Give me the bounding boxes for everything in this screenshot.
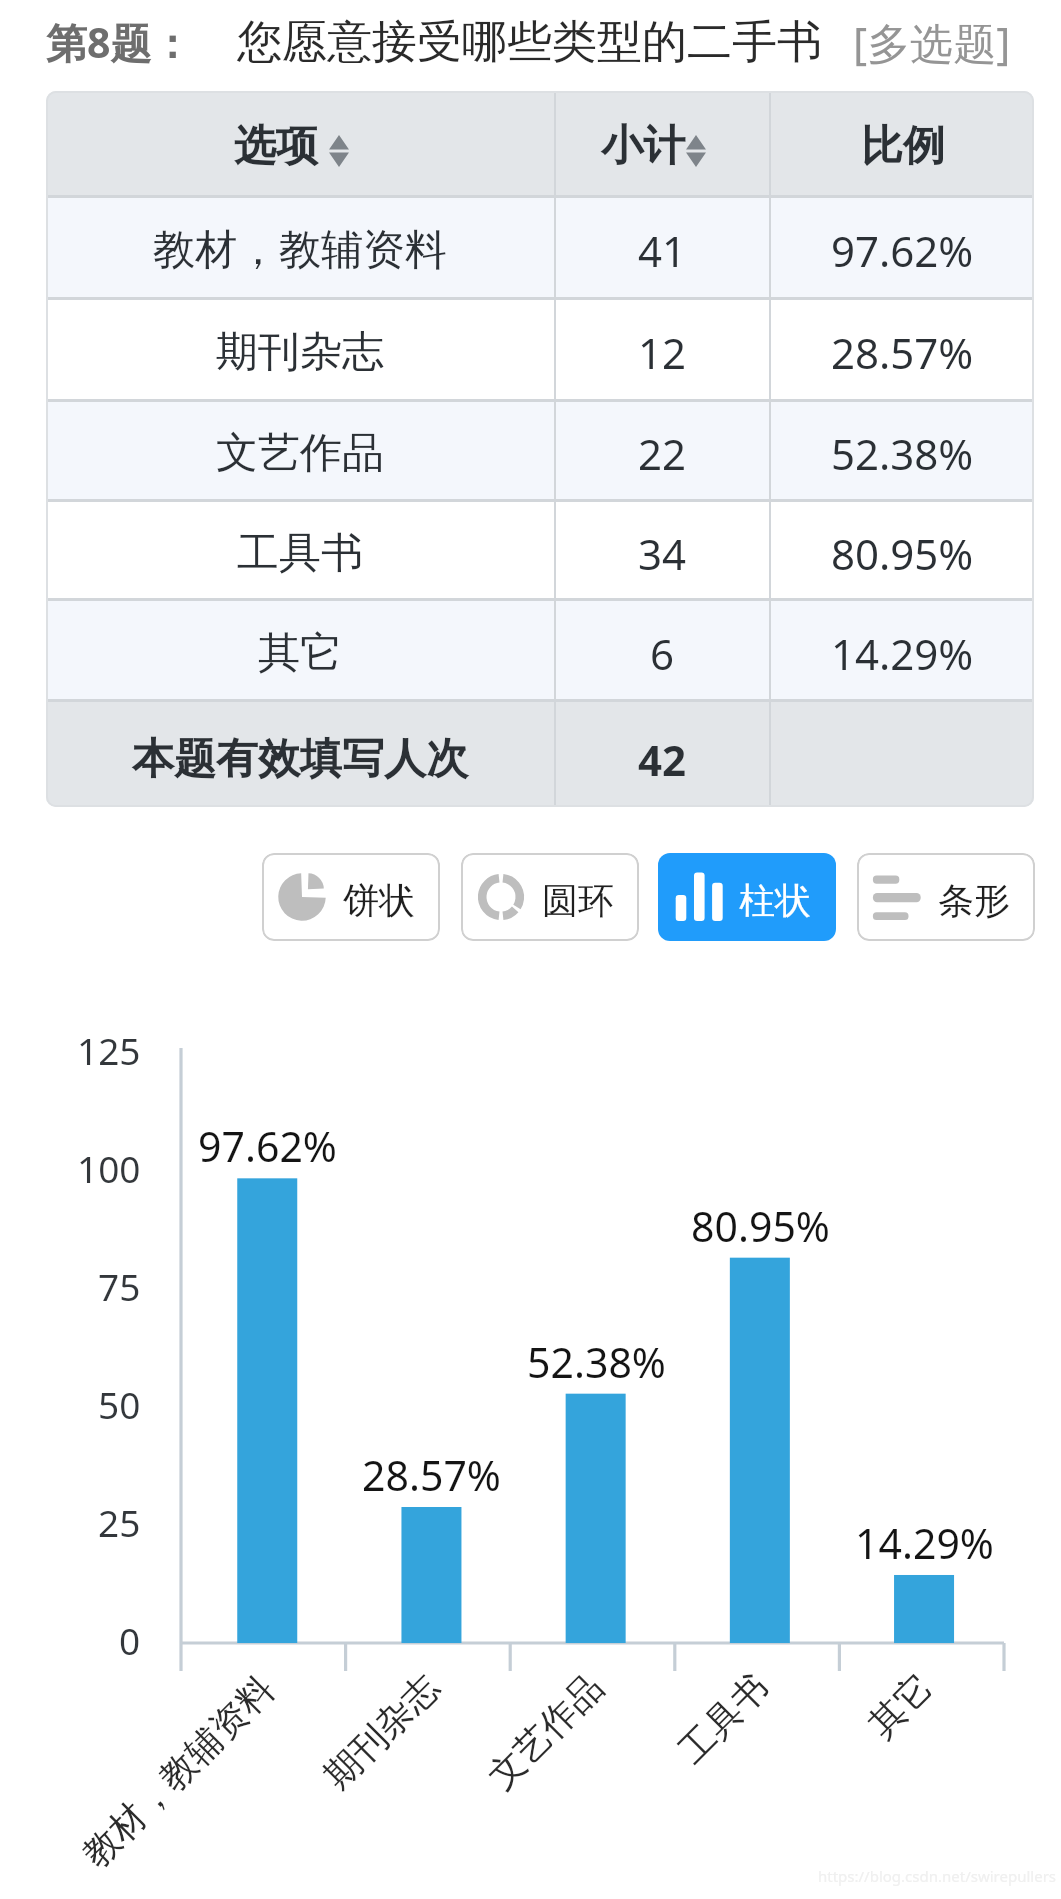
- staticText: 您愿意接受哪些类型的二手书: [237, 14, 822, 71]
- staticText: 14.29%: [855, 1515, 994, 1571]
- staticText: 28.57%: [362, 1447, 501, 1503]
- staticText: 34: [638, 525, 687, 582]
- button[interactable]: Bar chart: [857, 853, 1035, 941]
- staticText: 工具书: [237, 527, 363, 580]
- staticText: 文艺作品: [216, 427, 384, 480]
- staticText: 其它: [258, 627, 342, 680]
- staticText: 125: [77, 1025, 141, 1075]
- staticText: 97.62%: [831, 222, 974, 279]
- staticText: 100: [77, 1143, 141, 1193]
- staticText: 饼状: [343, 878, 415, 923]
- staticText: 6: [650, 625, 675, 682]
- staticText: 42: [638, 731, 687, 788]
- button[interactable]: 小计: [556, 91, 769, 195]
- staticText: 选项: [234, 120, 318, 173]
- staticText: 50: [98, 1379, 141, 1429]
- staticText: 条形: [938, 878, 1010, 923]
- staticText: 比例: [861, 120, 945, 173]
- staticText: 教材，教辅资料: [73, 1666, 283, 1876]
- staticText: 期刊杂志: [314, 1664, 448, 1798]
- staticText: 工具书: [669, 1664, 777, 1772]
- staticText: 25: [98, 1497, 141, 1547]
- staticText: 52.38%: [831, 425, 974, 482]
- staticText: 52.38%: [527, 1334, 666, 1390]
- staticText: 14.29%: [831, 625, 974, 682]
- button[interactable]: Pie chart: [262, 853, 440, 941]
- staticText: 41: [638, 222, 687, 279]
- staticText: 第8题：: [46, 14, 193, 70]
- staticText: 文艺作品: [478, 1664, 612, 1798]
- button[interactable]: Column chart: [658, 853, 836, 941]
- staticText: 本题有效填写人次: [132, 733, 468, 786]
- staticText: 75: [98, 1261, 141, 1311]
- staticText: 22: [638, 425, 687, 482]
- staticText: 0: [119, 1615, 141, 1665]
- staticText: 教材，教辅资料: [153, 224, 447, 277]
- staticText: 柱状: [739, 878, 811, 923]
- staticText: 期刊杂志: [216, 326, 384, 379]
- button[interactable]: 选项: [46, 91, 554, 195]
- staticText: 其它: [859, 1664, 942, 1747]
- staticText: 圆环: [542, 878, 614, 923]
- staticText: 小计: [601, 120, 685, 173]
- staticText: [多选题]: [853, 13, 1011, 72]
- staticText: 80.95%: [831, 525, 974, 582]
- staticText: 12: [638, 324, 687, 381]
- staticText: 28.57%: [831, 324, 974, 381]
- staticText: 97.62%: [198, 1118, 337, 1174]
- staticText: https://blog.csdn.net/swirepullers: [818, 1866, 1057, 1886]
- button[interactable]: Donut chart: [461, 853, 639, 941]
- staticText: 80.95%: [691, 1198, 830, 1254]
